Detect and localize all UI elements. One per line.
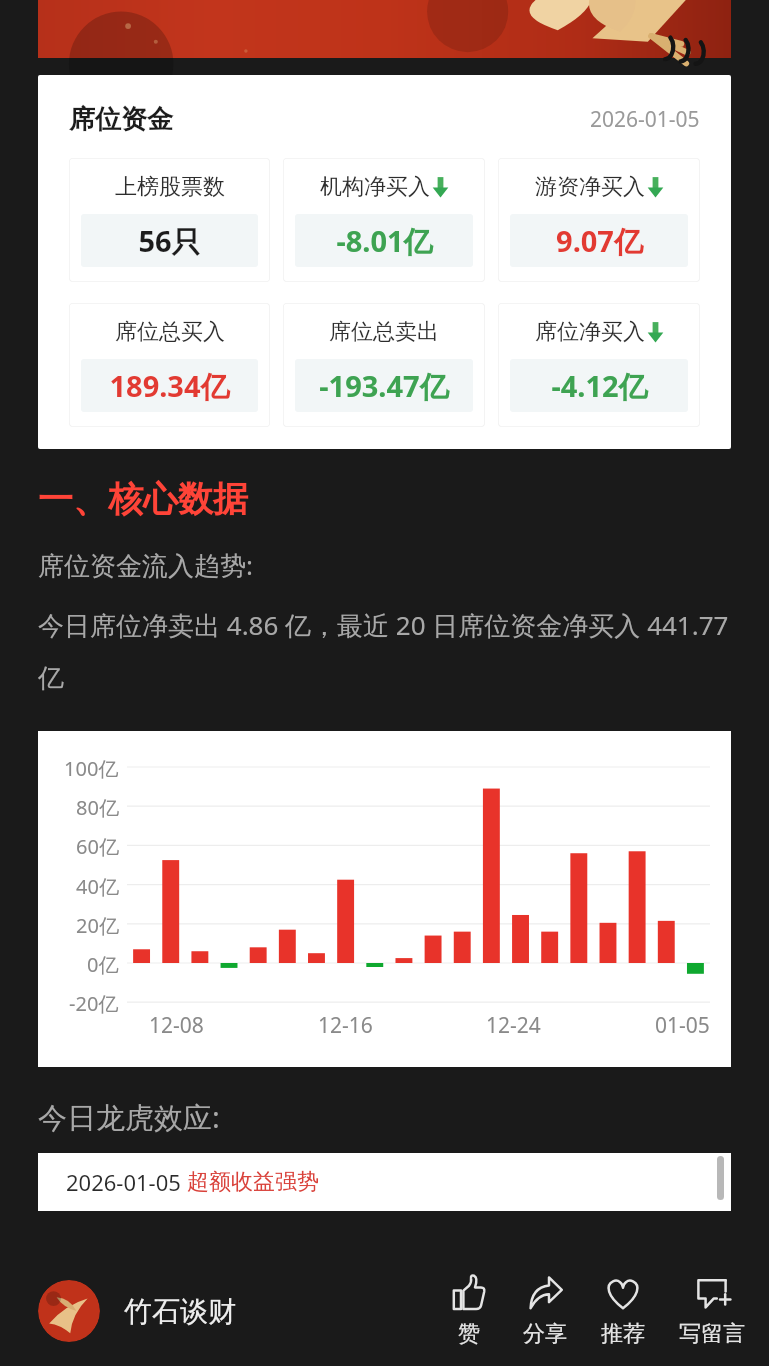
staticText: 12-08 [149, 1011, 204, 1040]
staticText: -193.47亿 [319, 366, 449, 406]
staticText: 100亿 [64, 755, 119, 782]
button[interactable]: Write comment [675, 1273, 749, 1348]
staticText: 一、核心数据 [38, 477, 248, 521]
staticText: -20亿 [69, 990, 119, 1017]
staticText: 2026-01-05 [590, 105, 700, 134]
staticText: 写留言 [679, 1320, 745, 1348]
staticText: 席位总卖出 [329, 318, 439, 346]
staticText: 60亿 [76, 833, 119, 860]
staticText: 20亿 [76, 912, 119, 939]
staticText: 分享 [523, 1320, 567, 1348]
staticText: 赞 [458, 1320, 480, 1348]
staticText: 40亿 [76, 873, 119, 900]
button[interactable]: 席位总卖出 [283, 303, 485, 427]
staticText: 超额收益强势 [187, 1168, 319, 1196]
staticText: 席位资金 [69, 103, 173, 136]
button[interactable]: 席位净买入 [498, 303, 700, 427]
staticText: 12-16 [318, 1011, 373, 1040]
staticText: 9.07亿 [556, 221, 643, 261]
staticText: 2026-01-05 [66, 1167, 187, 1197]
button[interactable]: 游资净买入 [498, 158, 700, 282]
staticText: -4.12亿 [551, 366, 648, 406]
staticText: -8.01亿 [336, 221, 433, 261]
staticText: 12-24 [486, 1011, 541, 1040]
staticText: 今日席位净卖出 4.86 亿，最近 20 日席位资金净买入 441.77 亿 [38, 607, 731, 695]
staticText: 0亿 [87, 951, 119, 978]
staticText: 席位资金流入趋势: [38, 547, 253, 583]
staticText: 席位净买入 [535, 318, 645, 346]
button[interactable]: 席位总买入 [69, 303, 270, 427]
staticText: 56只 [138, 221, 201, 261]
button[interactable]: Like [445, 1273, 493, 1348]
button[interactable]: 机构净买入 [283, 158, 485, 282]
staticText: 上榜股票数 [115, 173, 225, 201]
staticText: 今日龙虎效应: [38, 1097, 220, 1137]
button[interactable]: 2026-01-05 [38, 1153, 731, 1211]
staticText: 游资净买入 [535, 173, 645, 201]
staticText: 席位总买入 [115, 318, 225, 346]
staticText: 竹石谈财 [124, 1294, 236, 1329]
staticText: 机构净买入 [320, 173, 430, 201]
button[interactable]: 上榜股票数 [69, 158, 270, 282]
staticText: 推荐 [601, 1320, 645, 1348]
button[interactable]: Recommend [597, 1273, 649, 1348]
button[interactable]: Share [519, 1273, 571, 1348]
button[interactable]: 竹石谈财 [38, 1280, 236, 1342]
staticText: 189.34亿 [109, 366, 230, 406]
staticText: 01-05 [655, 1011, 710, 1040]
staticText: 80亿 [76, 794, 119, 821]
